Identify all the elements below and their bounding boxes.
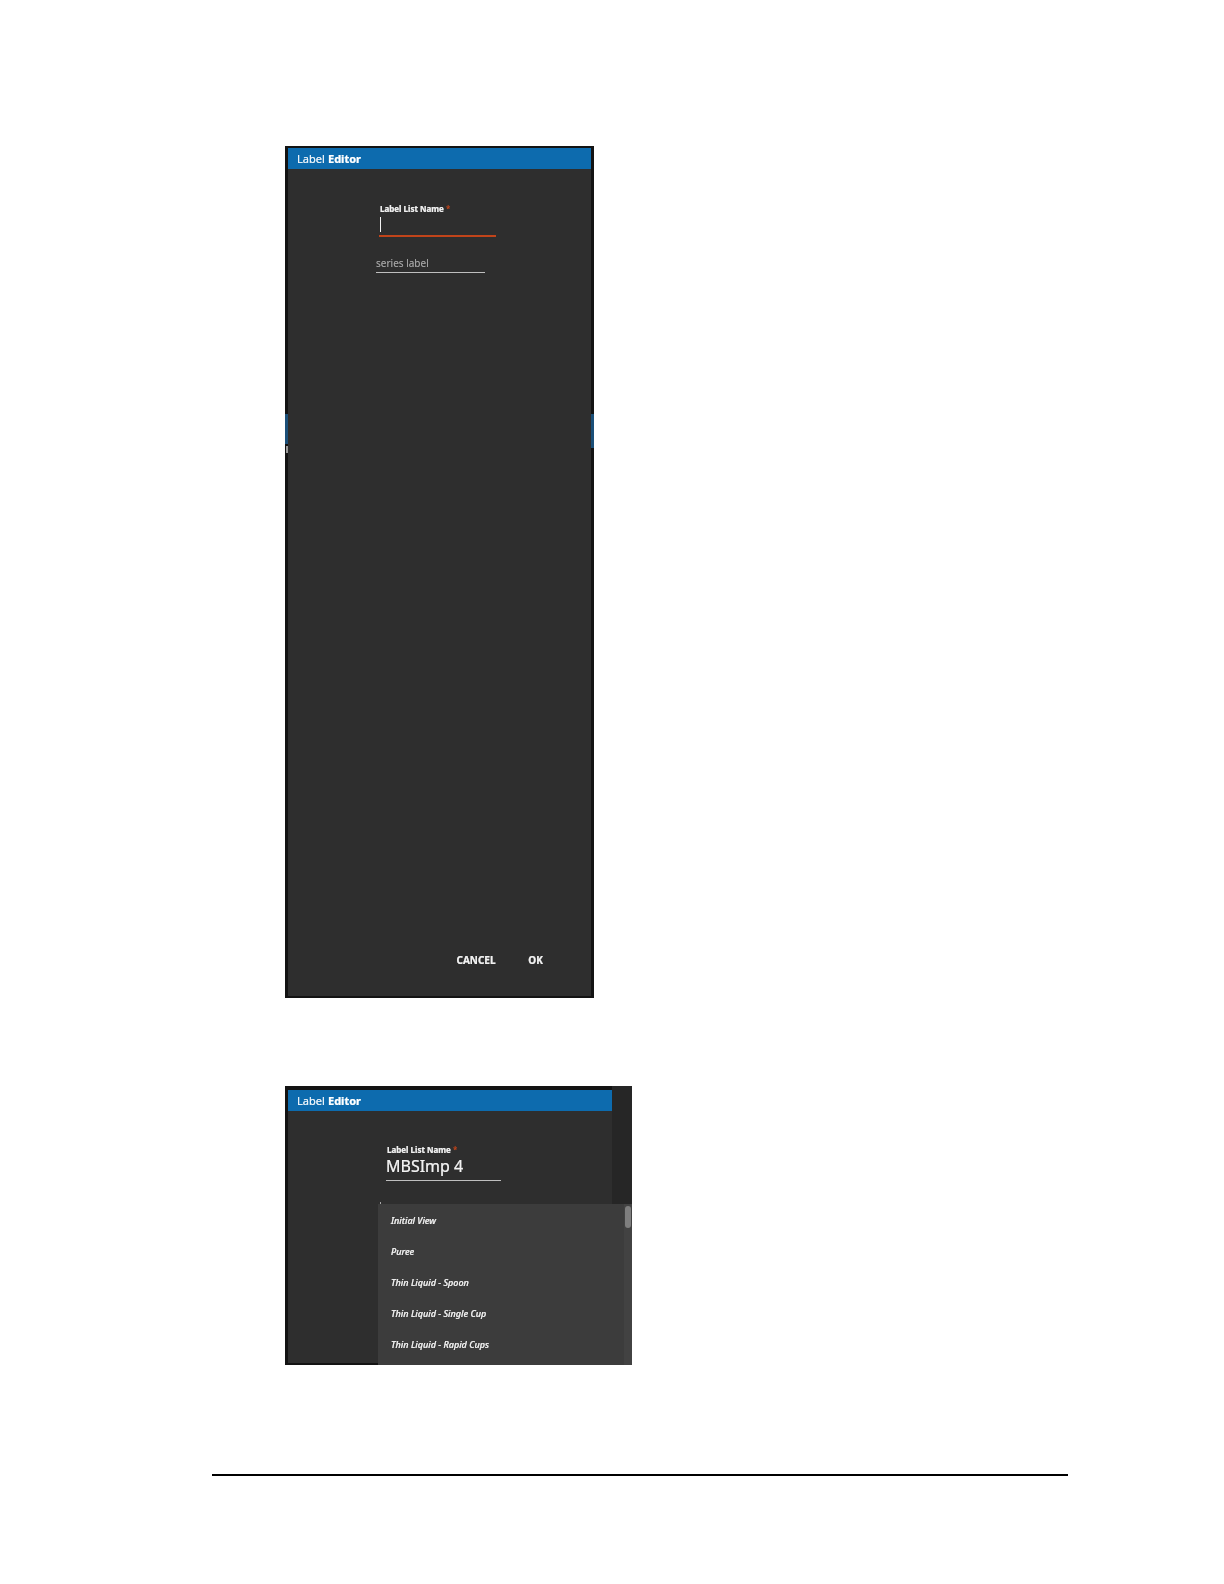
staticText: Thin Liquid - Rapid Cups <box>391 1338 490 1350</box>
staticText: series label <box>380 1202 433 1216</box>
staticText: * <box>446 203 451 214</box>
staticText: Initial View <box>391 1214 436 1226</box>
staticText: Editor <box>328 151 361 166</box>
button[interactable]: Label <box>288 148 591 169</box>
staticText: OK <box>528 953 543 967</box>
staticText: Label List Name <box>387 1144 451 1155</box>
staticText: Label <box>297 151 328 166</box>
button[interactable]: Label <box>288 1090 612 1111</box>
staticText: Puree <box>391 1245 415 1257</box>
button[interactable]: Thin Liquid - Rapid Cups <box>378 1328 632 1359</box>
staticText: Thin Liquid - Spoon <box>391 1276 469 1288</box>
button[interactable]: Thin Liquid - Single Cup <box>378 1297 632 1328</box>
staticText: Label <box>297 1093 328 1108</box>
button[interactable]: OK <box>524 950 547 970</box>
staticText: series label <box>376 256 429 270</box>
button[interactable]: Thin Liquid - Spoon <box>378 1266 632 1297</box>
staticText: Thin Liquid - Single Cup <box>391 1307 487 1319</box>
staticText: CANCEL <box>456 953 496 967</box>
staticText: * <box>453 1144 458 1155</box>
button[interactable]: Initial View <box>378 1204 632 1235</box>
button[interactable]: Puree <box>378 1235 632 1266</box>
button[interactable]: CANCEL <box>452 950 500 970</box>
staticText: Editor <box>328 1093 361 1108</box>
staticText: MBSImp 4 <box>386 1155 464 1177</box>
staticText: Label List Name <box>380 203 444 214</box>
